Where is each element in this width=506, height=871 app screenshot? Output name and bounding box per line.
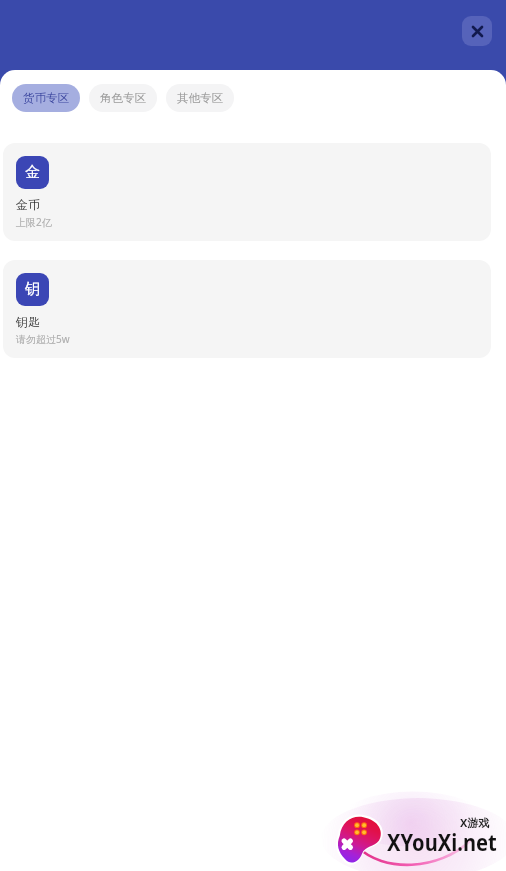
button[interactable]: 其他专区 (166, 84, 234, 112)
button[interactable]: Close (462, 16, 492, 46)
staticText: 货币专区 (23, 91, 69, 105)
staticText: 其他专区 (177, 91, 223, 105)
staticText: X游戏 (460, 815, 490, 830)
button[interactable]: 金 (3, 143, 491, 241)
staticText: 钥 (25, 280, 40, 299)
button[interactable]: 角色专区 (89, 84, 157, 112)
staticText: XYouXi.net (387, 826, 497, 857)
staticText: 金 (25, 163, 40, 182)
button[interactable]: 货币专区 (12, 84, 80, 112)
button[interactable]: 钥 (3, 260, 491, 358)
staticText: 请勿超过5w (16, 332, 70, 346)
staticText: 角色专区 (100, 91, 146, 105)
staticText: 金币 (16, 197, 40, 212)
staticText: 上限2亿 (16, 215, 52, 229)
staticText: 钥匙 (16, 314, 40, 329)
